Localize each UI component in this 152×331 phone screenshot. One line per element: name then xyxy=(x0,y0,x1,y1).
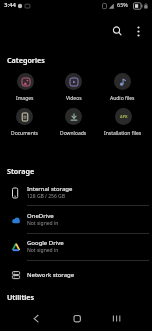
button[interactable] xyxy=(130,22,148,40)
staticText: Storage xyxy=(7,166,35,176)
button[interactable]: Network storage xyxy=(0,261,152,288)
button[interactable]: Audio files xyxy=(110,73,135,102)
staticText: 128 GB / 256 GB xyxy=(27,193,66,200)
button[interactable]: Internal storage xyxy=(0,180,152,205)
staticText: Images xyxy=(16,95,34,102)
staticText: Utilities xyxy=(7,292,35,302)
staticText: Installation files xyxy=(104,130,142,137)
staticText: Audio files xyxy=(110,95,135,102)
staticText: Not signed in xyxy=(27,220,59,227)
staticText: OneDrive xyxy=(27,212,54,220)
staticText: Network storage xyxy=(27,271,75,279)
button[interactable]: OneDrive xyxy=(0,205,152,233)
button[interactable]: Videos xyxy=(65,73,82,102)
button[interactable] xyxy=(105,306,127,328)
button[interactable] xyxy=(26,306,48,328)
button[interactable]: Documents xyxy=(11,108,38,137)
staticText: 3:44 xyxy=(4,1,16,9)
button[interactable] xyxy=(66,306,88,328)
button[interactable]: Downloads xyxy=(60,108,87,137)
staticText: Google Drive xyxy=(27,239,64,247)
staticText: APK xyxy=(120,114,128,119)
staticText: 65% xyxy=(117,1,128,8)
button[interactable]: Google Drive xyxy=(0,233,152,260)
staticText: Documents xyxy=(11,130,38,137)
staticText: Categories xyxy=(7,55,45,65)
button[interactable]: Images xyxy=(16,73,34,102)
staticText: Not signed in xyxy=(27,247,59,254)
button[interactable] xyxy=(108,22,126,40)
staticText: Videos xyxy=(66,95,82,102)
button[interactable]: APK xyxy=(104,108,142,137)
staticText: Downloads xyxy=(60,130,87,137)
staticText: Internal storage xyxy=(27,185,73,193)
